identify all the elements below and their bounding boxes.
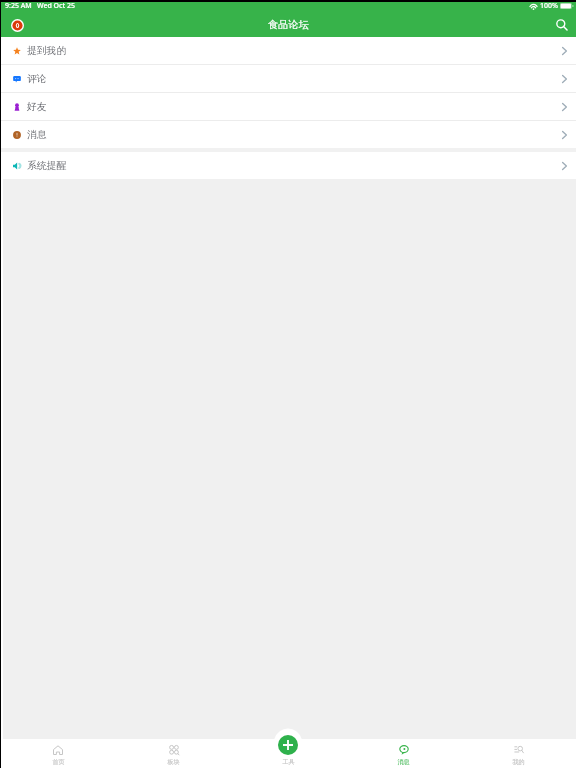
button[interactable]: 消息: [346, 739, 461, 768]
button[interactable]: 好友: [0, 93, 576, 120]
button[interactable]: 首页: [0, 739, 116, 768]
staticText: 100%: [540, 1, 558, 11]
button[interactable]: 评论: [0, 65, 576, 92]
button[interactable]: 消息: [0, 121, 576, 148]
button[interactable]: 板块: [116, 739, 231, 768]
button[interactable]: Search: [552, 15, 572, 35]
staticText: 系统提醒: [27, 160, 67, 172]
staticText: 评论: [27, 73, 47, 85]
staticText: 9:25 AM: [5, 1, 32, 11]
button[interactable]: 我的: [461, 739, 576, 768]
staticText: 首页: [52, 758, 65, 766]
staticText: 消息: [397, 758, 410, 766]
staticText: 消息: [27, 129, 47, 141]
button[interactable]: 工具: [231, 739, 346, 768]
staticText: 工具: [282, 758, 295, 766]
staticText: Wed Oct 25: [37, 1, 76, 11]
staticText: 好友: [27, 101, 47, 113]
staticText: 食品论坛: [268, 18, 309, 31]
button[interactable]: 提到我的: [0, 37, 576, 64]
button[interactable]: Add: [278, 735, 298, 755]
button[interactable]: 系统提醒: [0, 152, 576, 179]
staticText: 我的: [512, 758, 525, 766]
staticText: 板块: [167, 758, 180, 766]
staticText: 提到我的: [27, 45, 67, 57]
button[interactable]: Notifications: [7, 15, 27, 35]
